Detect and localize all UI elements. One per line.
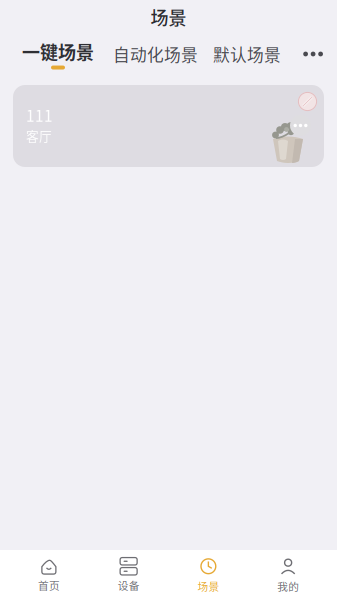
- staticText: 111: [26, 104, 53, 126]
- staticText: 一键场景: [22, 38, 94, 65]
- button[interactable]: 场景: [168, 550, 248, 600]
- staticText: 场景: [197, 578, 219, 594]
- button[interactable]: 默认场景: [213, 42, 281, 66]
- staticText: 客厅: [26, 126, 52, 144]
- button[interactable]: 我的: [248, 550, 328, 600]
- staticText: 默认场景: [213, 42, 281, 66]
- button[interactable]: 一键场景: [22, 38, 94, 70]
- button[interactable]: 设备: [89, 550, 169, 600]
- button[interactable]: 首页: [9, 550, 89, 600]
- button[interactable]: 自动化场景: [113, 42, 198, 66]
- staticText: 设备: [118, 577, 140, 593]
- staticText: 首页: [38, 577, 60, 593]
- button[interactable]: 111: [0, 74, 337, 167]
- button[interactable]: More: [303, 52, 323, 56]
- staticText: 自动化场景: [113, 42, 198, 66]
- staticText: 我的: [277, 578, 299, 594]
- staticText: 场景: [150, 4, 186, 30]
